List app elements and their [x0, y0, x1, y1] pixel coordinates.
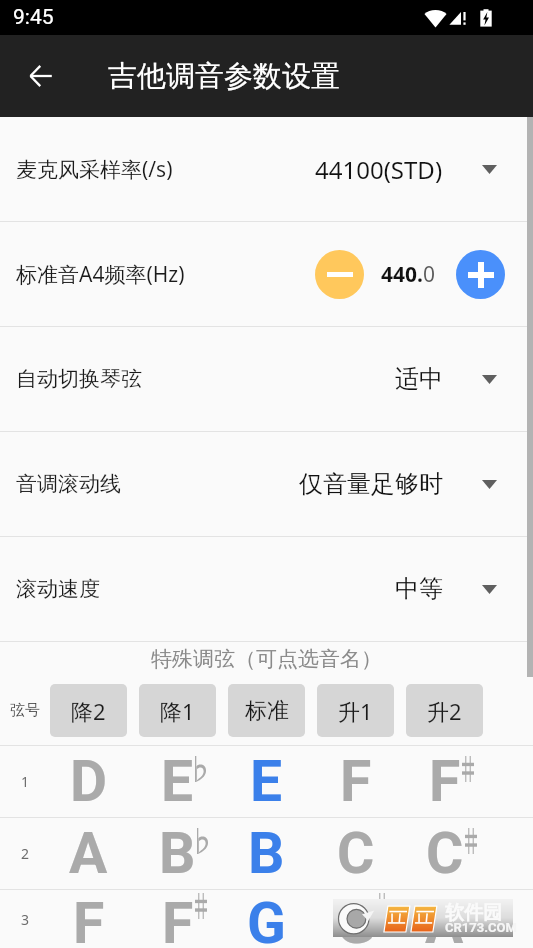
staticText: 自动切换琴弦 [16, 366, 142, 392]
staticText: 麦克风采样率(/s) [16, 155, 173, 184]
staticText: B [248, 820, 285, 887]
button[interactable]: F [139, 890, 216, 948]
button[interactable]: 音调滚动线 [0, 432, 533, 536]
button[interactable]: C [317, 818, 394, 889]
staticText: 中等 [395, 574, 443, 604]
staticText: B [159, 820, 196, 887]
staticText: 440.0 [381, 260, 435, 289]
staticText: F [73, 890, 105, 948]
staticText: 降1 [160, 696, 195, 726]
button[interactable]: 降2 [50, 684, 127, 737]
staticText: A [69, 820, 108, 887]
staticText: 2 [21, 844, 30, 863]
staticText: 软件园 [445, 901, 502, 925]
button[interactable]: 升1 [317, 684, 394, 737]
button[interactable]: Back [19, 54, 63, 98]
staticText: 降2 [71, 696, 106, 726]
staticText: A [425, 890, 464, 948]
button[interactable]: A [406, 890, 483, 948]
button[interactable]: B [228, 818, 305, 889]
button[interactable]: 标准 [228, 684, 305, 737]
staticText: 滚动速度 [16, 576, 100, 602]
button[interactable]: 标准音A4频率(Hz) [0, 222, 533, 326]
staticText: 升2 [427, 696, 462, 726]
staticText: 音调滚动线 [16, 471, 121, 497]
button[interactable]: 升2 [406, 684, 483, 737]
button[interactable]: G [228, 890, 305, 948]
button[interactable]: E [139, 746, 216, 817]
button[interactable]: F [317, 746, 394, 817]
staticText: C [337, 820, 375, 887]
button[interactable]: F [50, 890, 127, 948]
button[interactable]: 自动切换琴弦 [0, 327, 533, 431]
staticText: 仅音量足够时 [299, 469, 443, 499]
staticText: 9:45 [13, 5, 54, 30]
button[interactable]: Increase frequency [456, 250, 505, 299]
button[interactable]: G [317, 890, 394, 948]
button[interactable]: 滚动速度 [0, 537, 533, 641]
staticText: 标准音A4频率(Hz) [16, 260, 185, 289]
staticText: 适中 [395, 364, 443, 394]
staticText: 3 [21, 910, 30, 929]
button[interactable]: F [406, 746, 483, 817]
staticText: F [429, 748, 461, 815]
staticText: 1 [21, 772, 30, 791]
button[interactable]: D [50, 746, 127, 817]
button[interactable]: Decrease frequency [315, 250, 364, 299]
staticText: G [336, 890, 375, 948]
button[interactable]: A [50, 818, 127, 889]
button[interactable]: 降1 [139, 684, 216, 737]
staticText: 弦号 [10, 701, 40, 720]
button[interactable]: E [228, 746, 305, 817]
staticText: 特殊调弦（可点选音名） [151, 646, 382, 672]
staticText: 标准 [245, 697, 289, 725]
staticText: 吉他调音参数设置 [108, 58, 340, 95]
staticText: 升1 [338, 696, 373, 726]
button[interactable]: C [406, 818, 483, 889]
staticText: C [426, 820, 464, 887]
button[interactable]: B [139, 818, 216, 889]
staticText: F [340, 748, 372, 815]
staticText: E [161, 748, 194, 815]
staticText: CR173.COM [445, 920, 517, 935]
staticText: D [70, 748, 108, 815]
staticText: E [250, 748, 283, 815]
button[interactable]: 麦克风采样率(/s) [0, 117, 533, 221]
staticText: G [247, 890, 286, 948]
staticText: 44100(STD) [315, 153, 443, 186]
staticText: F [162, 890, 194, 948]
